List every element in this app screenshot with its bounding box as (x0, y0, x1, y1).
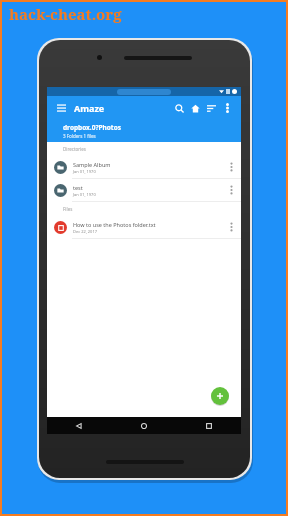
staticText: Files (63, 206, 73, 212)
staticText: hack-cheat.org (9, 4, 122, 24)
staticText: 3 Folders 1 files (63, 133, 96, 139)
button[interactable]: Home (111, 417, 176, 434)
button[interactable]: Search (171, 98, 187, 118)
staticText: Sample Album (73, 161, 111, 168)
button[interactable]: More options for Sample Album (225, 157, 237, 177)
staticText: Amaze (74, 102, 105, 114)
button[interactable]: Back (47, 417, 111, 434)
button[interactable]: Sort (203, 98, 219, 118)
button[interactable]: test (47, 179, 241, 201)
staticText: Dec 22, 2017 (73, 229, 97, 234)
staticText: Directories (63, 146, 86, 152)
button[interactable]: Open navigation drawer (53, 100, 69, 116)
button[interactable]: Recent apps (176, 417, 241, 434)
button[interactable]: How to use the Photos folder.txt (47, 216, 241, 238)
staticText: Jan 01, 1970 (73, 169, 96, 174)
button[interactable]: dropbox.0?Photos (47, 120, 241, 142)
button[interactable]: Create new (211, 387, 229, 405)
button[interactable]: More options (219, 98, 235, 118)
button[interactable]: More options for How to use the Photos f… (225, 217, 237, 237)
button[interactable]: More options for test (225, 180, 237, 200)
button[interactable]: Sample Album (47, 156, 241, 178)
staticText: test (73, 184, 83, 191)
button[interactable]: Home (187, 98, 203, 118)
staticText: How to use the Photos folder.txt (73, 221, 156, 228)
staticText: Jan 01, 1970 (73, 192, 96, 197)
staticText: dropbox.0?Photos (63, 123, 121, 132)
